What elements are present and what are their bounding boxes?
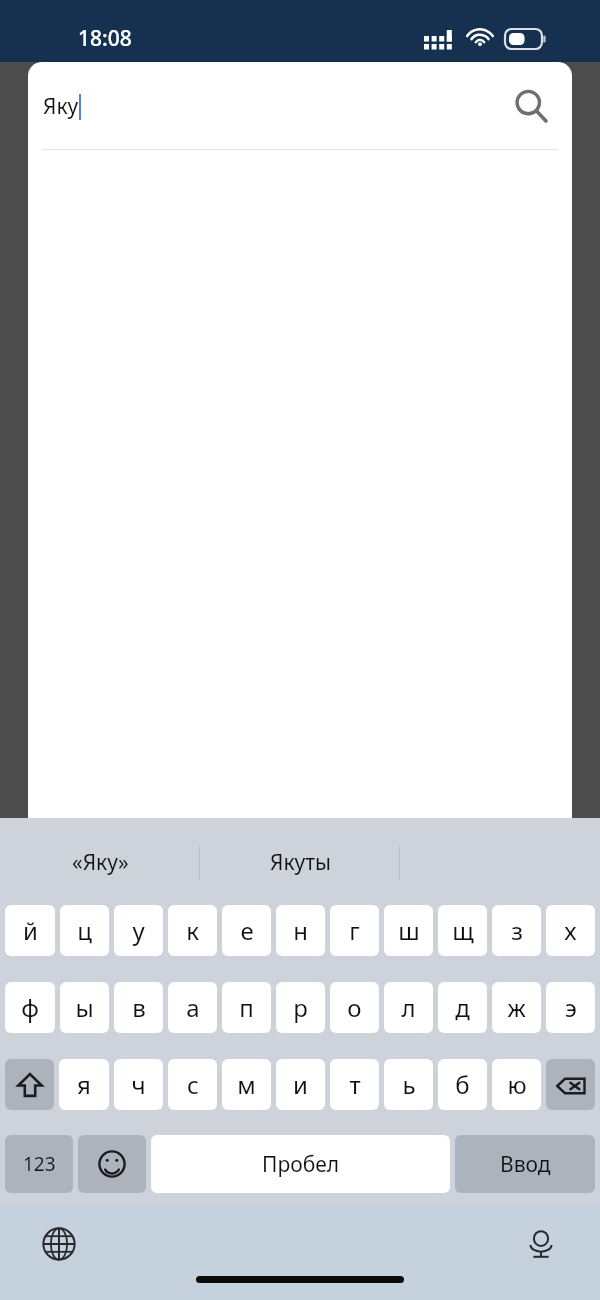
- staticText: д: [455, 991, 470, 1024]
- button[interactable]: м: [222, 1059, 271, 1110]
- button[interactable]: 123: [5, 1135, 73, 1193]
- button[interactable]: ш: [384, 905, 433, 956]
- button[interactable]: п: [222, 982, 271, 1033]
- staticText: ж: [507, 991, 526, 1024]
- button[interactable]: я: [59, 1059, 109, 1110]
- button[interactable]: Якуты: [200, 828, 400, 896]
- staticText: х: [564, 914, 577, 947]
- button[interactable]: е: [222, 905, 271, 956]
- button[interactable]: Emoji: [78, 1135, 146, 1193]
- staticText: т: [349, 1068, 361, 1101]
- staticText: а: [186, 991, 200, 1024]
- button[interactable]: у: [114, 905, 163, 956]
- button[interactable]: «Яку»: [0, 828, 200, 896]
- staticText: о: [347, 991, 362, 1024]
- button[interactable]: д: [438, 982, 487, 1033]
- staticText: ц: [77, 914, 92, 947]
- button[interactable]: ь: [384, 1059, 433, 1110]
- staticText: ш: [398, 914, 420, 947]
- button[interactable]: Ввод: [455, 1135, 595, 1193]
- button[interactable]: Backspace: [546, 1059, 595, 1110]
- staticText: э: [565, 991, 577, 1024]
- staticText: и: [293, 1068, 308, 1101]
- button[interactable]: в: [114, 982, 163, 1033]
- button[interactable]: ю: [492, 1059, 541, 1110]
- button[interactable]: щ: [438, 905, 487, 956]
- staticText: е: [240, 914, 254, 947]
- staticText: у: [132, 914, 145, 947]
- button[interactable]: н: [276, 905, 325, 956]
- staticText: р: [293, 991, 308, 1024]
- button[interactable]: г: [330, 905, 379, 956]
- button[interactable]: ф: [5, 982, 55, 1033]
- staticText: б: [455, 1068, 470, 1101]
- button[interactable]: э: [546, 982, 595, 1033]
- staticText: й: [23, 914, 38, 947]
- button[interactable]: о: [330, 982, 379, 1033]
- staticText: с: [187, 1068, 199, 1101]
- staticText: л: [401, 991, 416, 1024]
- button[interactable]: Shift: [5, 1059, 54, 1110]
- button[interactable]: ц: [60, 905, 109, 956]
- button[interactable]: р: [276, 982, 325, 1033]
- button[interactable]: л: [384, 982, 433, 1033]
- staticText: в: [132, 991, 146, 1024]
- staticText: п: [239, 991, 254, 1024]
- button[interactable]: к: [168, 905, 217, 956]
- button[interactable]: ч: [114, 1059, 163, 1110]
- staticText: Пробел: [262, 1150, 340, 1179]
- staticText: ы: [75, 991, 94, 1024]
- button[interactable]: з: [492, 905, 541, 956]
- staticText: к: [186, 914, 199, 947]
- staticText: ь: [402, 1068, 416, 1101]
- button[interactable]: й: [5, 905, 55, 956]
- button[interactable]: Voice input: [516, 1219, 566, 1269]
- button[interactable]: Пробел: [151, 1135, 450, 1193]
- staticText: «Яку»: [72, 848, 129, 877]
- staticText: г: [349, 914, 360, 947]
- staticText: з: [511, 914, 523, 947]
- staticText: н: [293, 914, 308, 947]
- staticText: щ: [452, 914, 474, 947]
- staticText: ю: [507, 1068, 527, 1101]
- button[interactable]: х: [546, 905, 595, 956]
- staticText: Якуты: [270, 848, 331, 877]
- staticText: Яку: [43, 92, 79, 121]
- staticText: я: [77, 1068, 91, 1101]
- button[interactable]: Change keyboard language: [34, 1219, 84, 1269]
- staticText: м: [237, 1068, 256, 1101]
- button[interactable]: т: [330, 1059, 379, 1110]
- staticText: ф: [21, 991, 39, 1024]
- button[interactable]: а: [168, 982, 217, 1033]
- staticText: 123: [23, 1151, 56, 1177]
- button[interactable]: ы: [60, 982, 109, 1033]
- staticText: ч: [131, 1068, 146, 1101]
- button[interactable]: Search: [504, 79, 558, 133]
- staticText: Ввод: [500, 1150, 551, 1179]
- button[interactable]: и: [276, 1059, 325, 1110]
- staticText: 18:08: [78, 24, 132, 53]
- button[interactable]: с: [168, 1059, 217, 1110]
- button[interactable]: б: [438, 1059, 487, 1110]
- button[interactable]: ж: [492, 982, 541, 1033]
